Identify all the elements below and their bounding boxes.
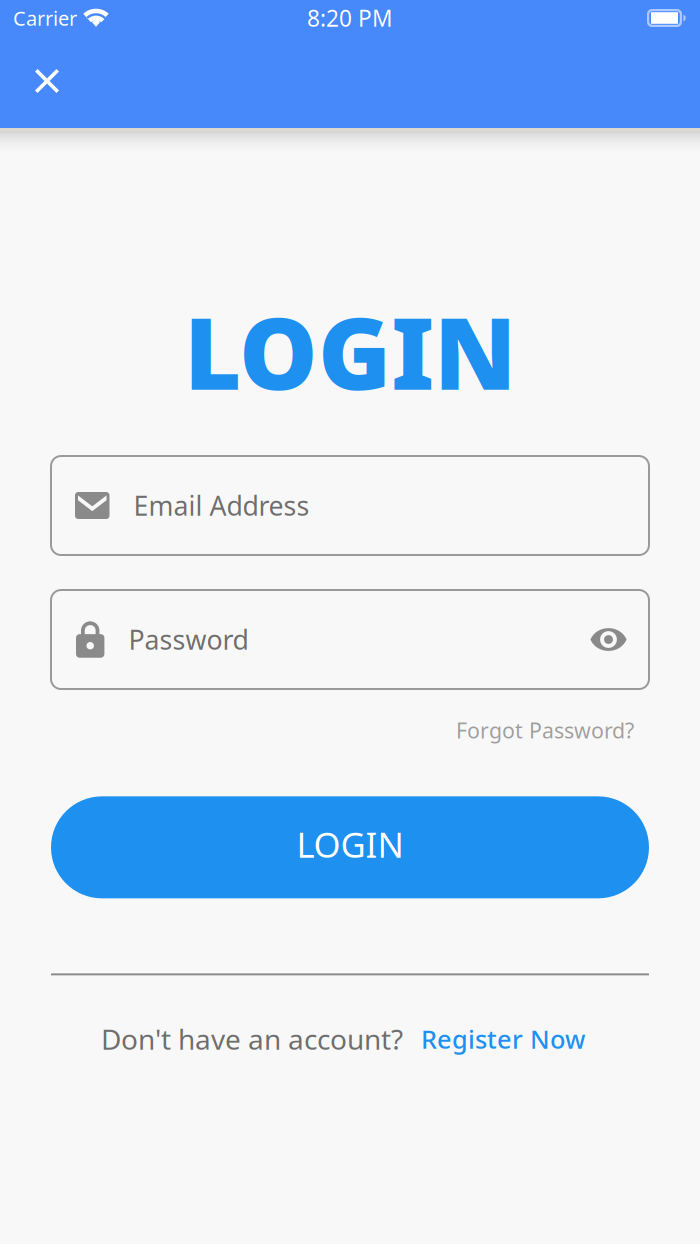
button[interactable]: Forgot Password? <box>456 716 634 744</box>
staticText: Password <box>128 622 248 657</box>
button[interactable]: LOGIN <box>51 796 649 898</box>
button[interactable]: Close <box>21 55 73 107</box>
staticText: Don't have an account? <box>101 1020 403 1058</box>
staticText: Register Now <box>421 1022 585 1056</box>
staticText: LOGIN <box>184 286 516 417</box>
staticText: LOGIN <box>296 821 403 867</box>
staticText: Carrier <box>13 5 77 31</box>
button[interactable]: Register Now <box>403 1022 585 1056</box>
button[interactable]: Password <box>51 590 590 689</box>
staticText: Email Address <box>133 488 309 523</box>
staticText: 8:20 PM <box>307 3 393 33</box>
button[interactable]: Show password <box>590 614 649 664</box>
button[interactable]: Email Address <box>51 456 649 555</box>
staticText: Forgot Password? <box>456 716 634 744</box>
